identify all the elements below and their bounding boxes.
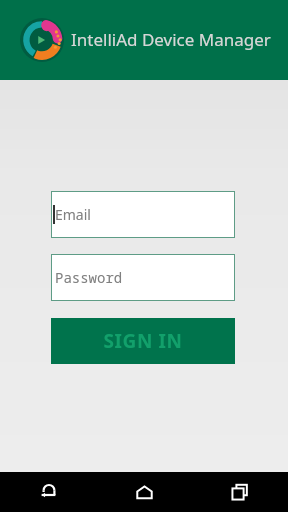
staticText: Email bbox=[55, 205, 91, 224]
button[interactable]: Home bbox=[96, 472, 192, 512]
button[interactable]: Password bbox=[51, 254, 235, 301]
button[interactable]: Email bbox=[51, 191, 235, 238]
staticText: SIGN IN bbox=[103, 328, 183, 354]
staticText: IntelliAd Device Manager bbox=[71, 28, 271, 51]
staticText: Password bbox=[55, 268, 123, 287]
button[interactable]: SIGN IN bbox=[51, 318, 235, 364]
button[interactable]: Recent apps bbox=[192, 472, 288, 512]
button[interactable]: Back bbox=[0, 472, 96, 512]
